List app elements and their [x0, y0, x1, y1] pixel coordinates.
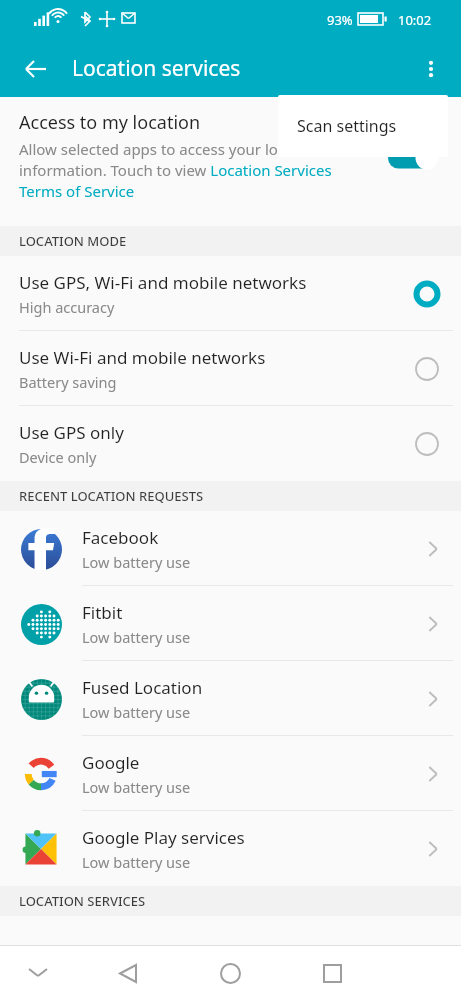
staticText: RECENT LOCATION REQUESTS	[19, 487, 204, 505]
button[interactable]: Google	[0, 736, 461, 811]
staticText: Use Wi-Fi and mobile networks	[19, 346, 266, 369]
button[interactable]: Recent apps	[310, 951, 354, 995]
button[interactable]: Fused Location	[0, 661, 461, 736]
staticText: Low battery use	[82, 852, 191, 872]
staticText: Low battery use	[82, 702, 191, 722]
button[interactable]: Back	[14, 47, 58, 91]
button[interactable]: Location toggle	[382, 139, 444, 177]
button[interactable]: Use Wi-Fi and mobile networks	[0, 331, 461, 406]
staticText: LOCATION MODE	[19, 232, 127, 250]
button[interactable]: Hide keyboard	[16, 951, 60, 995]
staticText: Location services	[72, 54, 241, 83]
button[interactable]: Google Play services	[0, 811, 461, 886]
staticText: Allow selected apps to access your locat…	[19, 139, 332, 202]
button[interactable]: Use GPS only	[0, 406, 461, 481]
staticText: Low battery use	[82, 627, 191, 647]
staticText: Low battery use	[82, 552, 191, 572]
staticText: Fused Location	[82, 676, 203, 699]
staticText: Google Play services	[82, 826, 245, 849]
staticText: Device only	[19, 447, 97, 467]
button[interactable]: Fitbit	[0, 586, 461, 661]
staticText: Fitbit	[82, 601, 123, 624]
button[interactable]: Facebook	[0, 511, 461, 586]
staticText: Facebook	[82, 526, 159, 549]
staticText: 93%	[327, 11, 353, 29]
button[interactable]: More options	[409, 47, 453, 91]
staticText: Use GPS only	[19, 421, 124, 444]
staticText: Access to my location	[19, 110, 201, 135]
button[interactable]: Use GPS, Wi-Fi and mobile networks	[0, 256, 461, 331]
staticText: Battery saving	[19, 372, 117, 392]
staticText: Low battery use	[82, 777, 191, 797]
staticText: Use GPS, Wi-Fi and mobile networks	[19, 271, 307, 294]
staticText: 10:02	[398, 11, 432, 29]
staticText: Google	[82, 751, 140, 774]
staticText: High accuracy	[19, 297, 115, 317]
button[interactable]: Scan settings	[278, 95, 448, 157]
staticText: LOCATION SERVICES	[19, 892, 146, 910]
staticText: Scan settings	[297, 115, 397, 137]
button[interactable]: Home	[208, 951, 252, 995]
button[interactable]: Back	[106, 951, 150, 995]
